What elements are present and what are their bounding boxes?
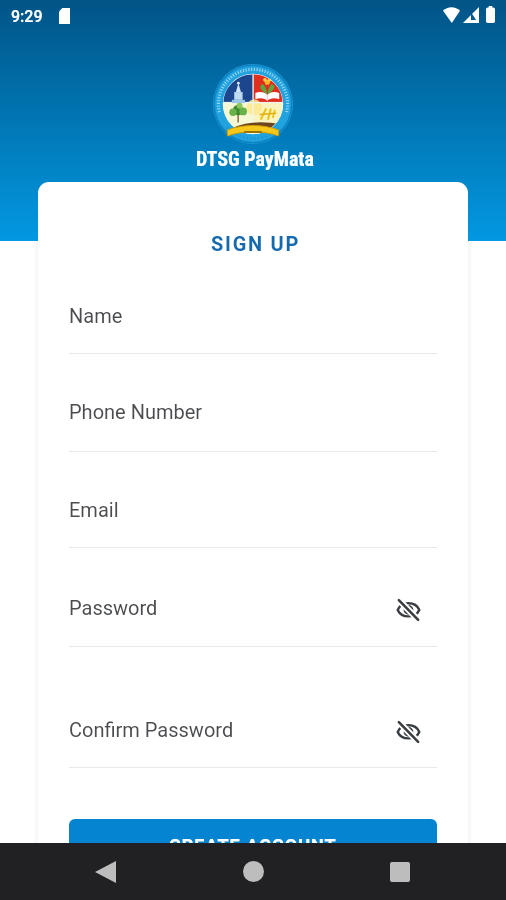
staticText: Email bbox=[69, 498, 119, 521]
button[interactable]: CREATE ACCOUNT bbox=[69, 819, 437, 871]
staticText: Confirm Password bbox=[69, 718, 234, 741]
button[interactable]: Home bbox=[226, 843, 281, 900]
staticText: Password bbox=[69, 596, 158, 619]
staticText: Phone Number bbox=[69, 400, 203, 423]
staticText: SIGN UP bbox=[211, 232, 301, 255]
staticText: DTSG PayMata bbox=[196, 147, 314, 170]
button[interactable]: Toggle Password visibility bbox=[386, 587, 430, 631]
button[interactable]: Back bbox=[78, 843, 133, 900]
staticText: CREATE ACCOUNT bbox=[169, 835, 337, 856]
button[interactable]: Recent apps bbox=[372, 843, 427, 900]
staticText: Name bbox=[69, 304, 123, 327]
staticText: 9:29 bbox=[11, 7, 43, 26]
button[interactable]: Toggle Confirm Password visibility bbox=[386, 709, 430, 753]
